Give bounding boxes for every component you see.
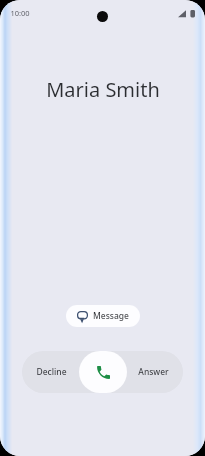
button[interactable]: Answer [123,351,183,393]
staticText: Maria Smith [46,76,160,103]
staticText: Answer [138,366,169,378]
button[interactable]: Answer call [79,351,127,393]
button[interactable]: Message [66,305,140,327]
staticText: Decline [36,366,67,378]
button[interactable]: Decline [22,351,81,393]
staticText: 10:00 [10,8,30,18]
staticText: Message [93,310,129,322]
